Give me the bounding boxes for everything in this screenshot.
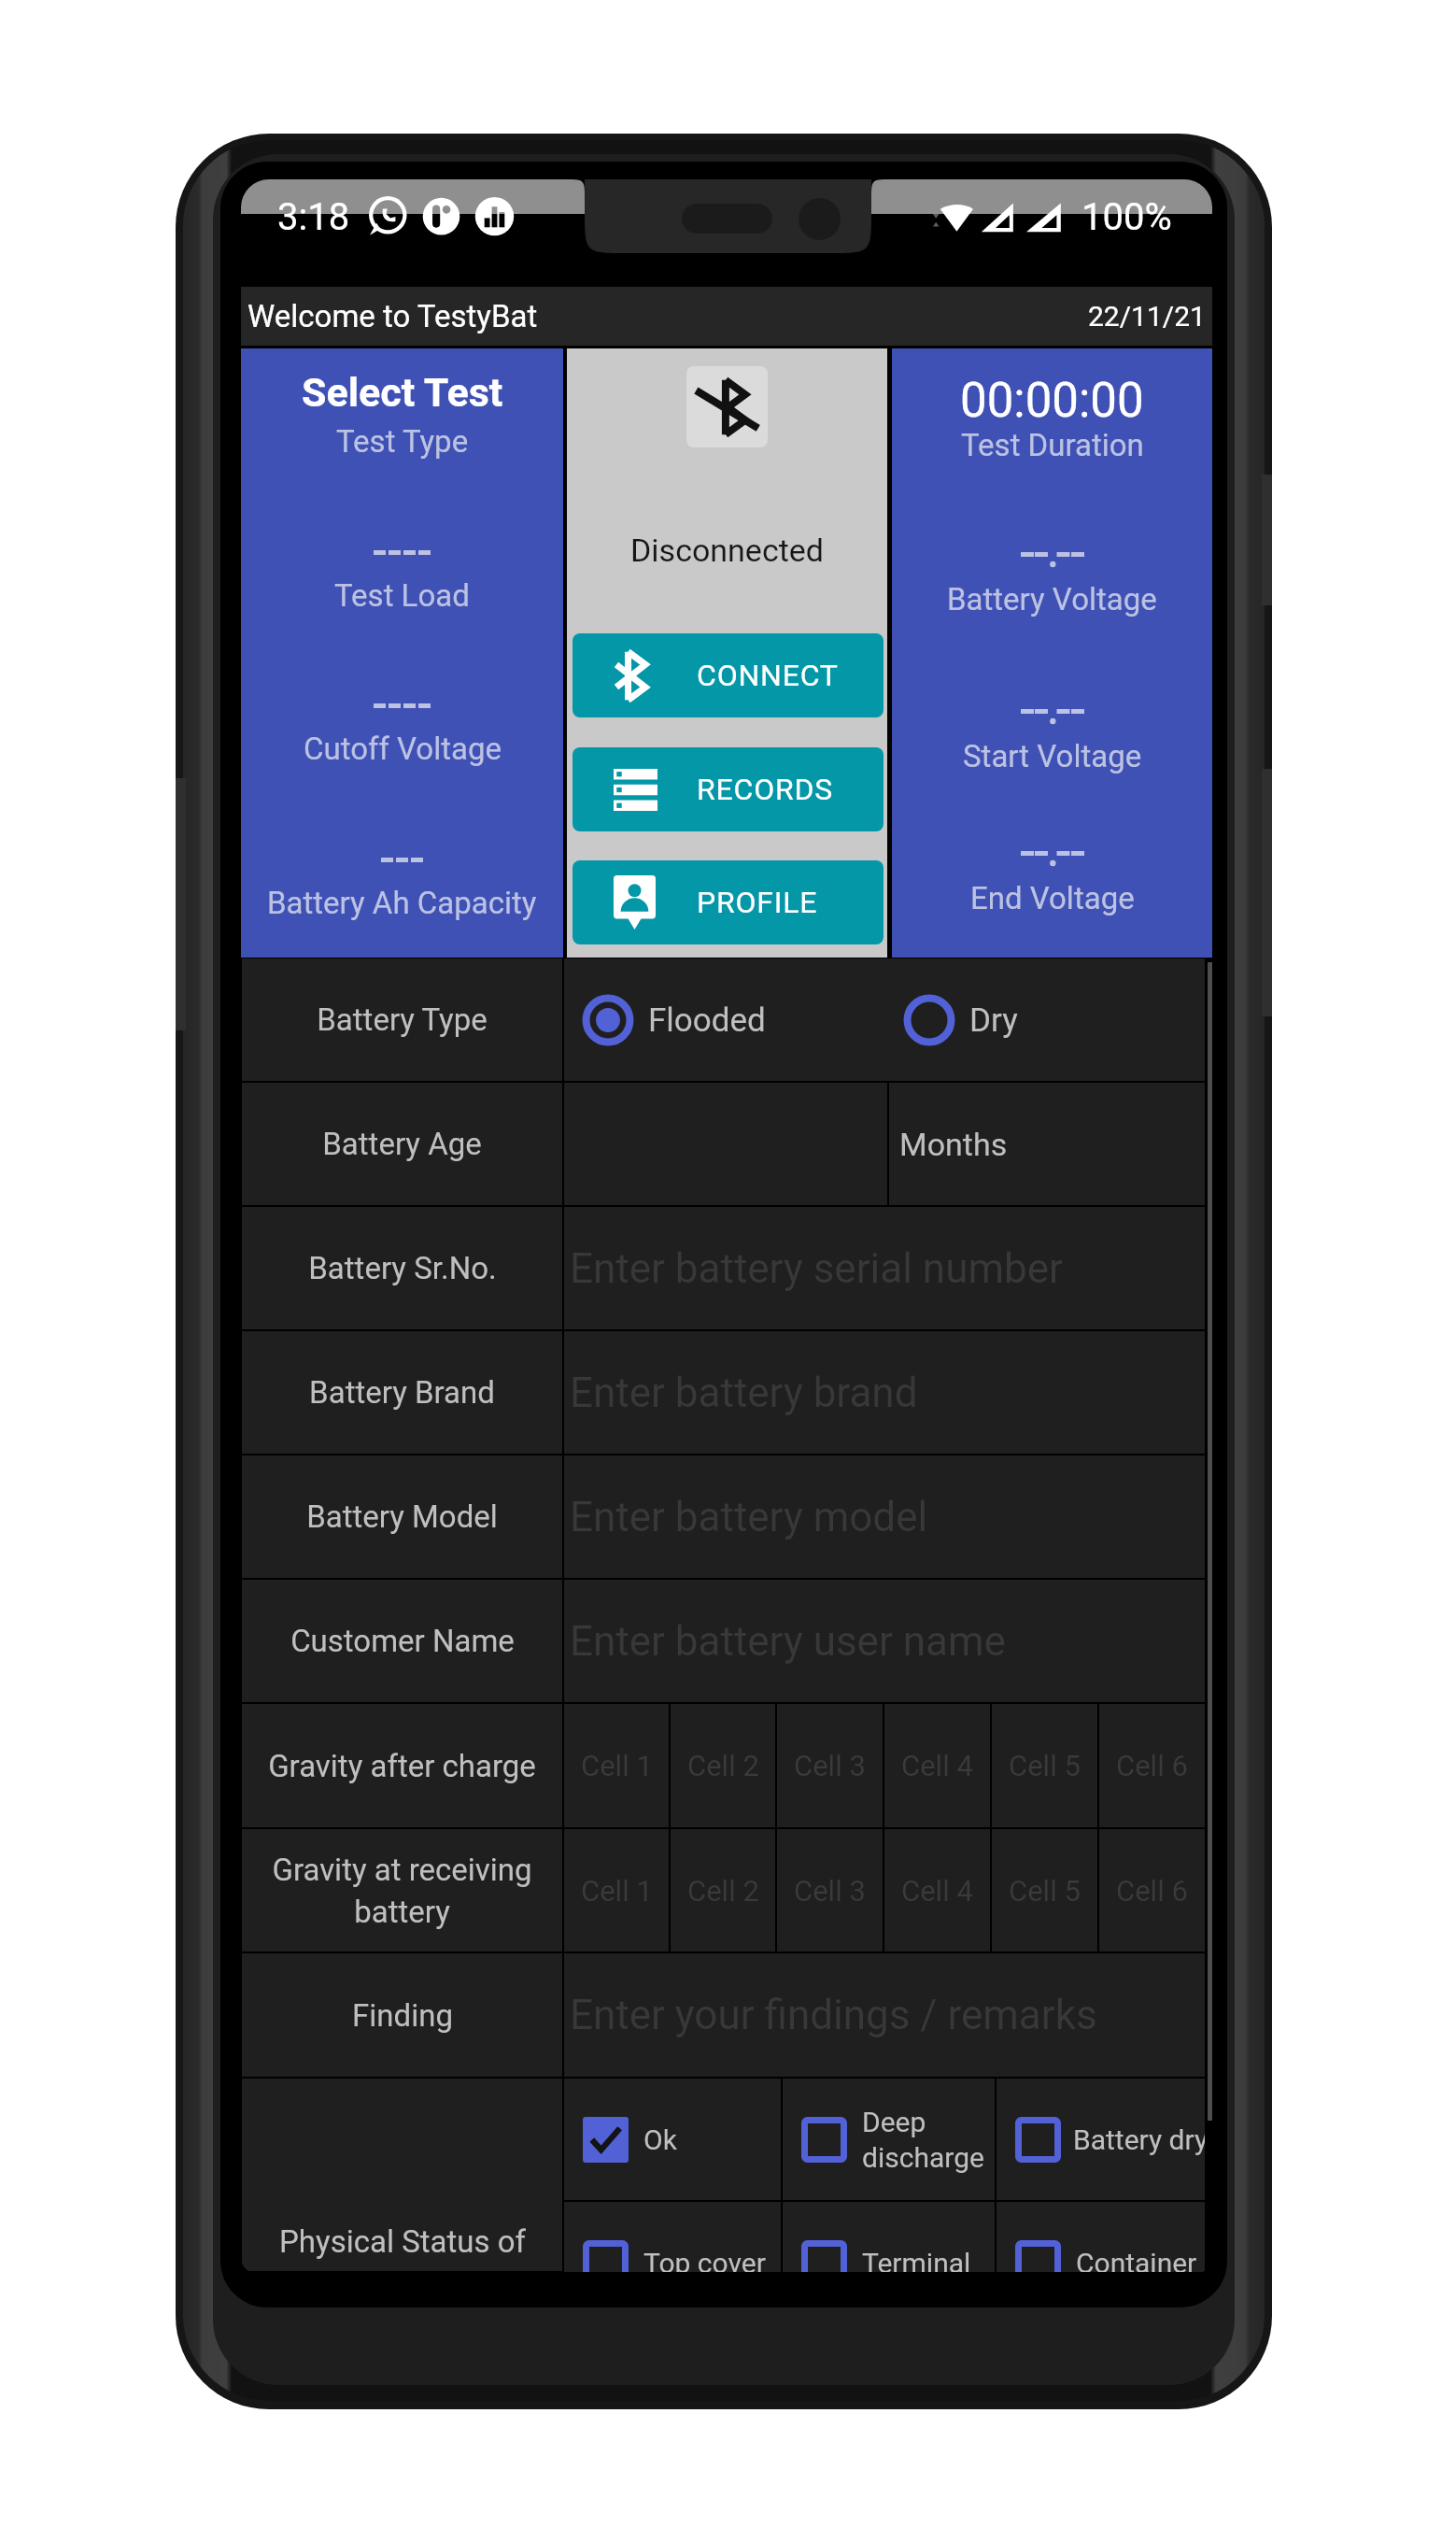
staticText: Cell 4 bbox=[901, 1874, 973, 1908]
staticText: RECORDS bbox=[697, 772, 834, 807]
staticText: Enter battery serial number bbox=[570, 1244, 1063, 1293]
staticText: Months bbox=[899, 1126, 1008, 1163]
staticText: Battery Sr.No. bbox=[308, 1250, 497, 1286]
button[interactable]: Cell 6 bbox=[1099, 1829, 1205, 1952]
staticText: 22/11/21 bbox=[1088, 300, 1206, 333]
staticText: Enter battery user name bbox=[570, 1617, 1006, 1666]
staticText: Battery Ah Capacity bbox=[267, 885, 537, 921]
staticText: Cutoff Voltage bbox=[304, 731, 502, 767]
staticText: Dry bbox=[969, 1001, 1018, 1040]
staticText: Gravity at receiving battery bbox=[257, 1852, 547, 1930]
button[interactable]: Enter your findings / remarks bbox=[564, 1953, 1205, 2077]
staticText: Top cover bbox=[643, 2247, 766, 2272]
button[interactable]: Battery dry bbox=[997, 2079, 1205, 2200]
button[interactable]: Bluetooth status bbox=[686, 366, 768, 447]
staticText: Cell 1 bbox=[581, 1874, 653, 1908]
button[interactable]: Enter battery model bbox=[564, 1455, 1205, 1578]
staticText: Container bbox=[1076, 2247, 1197, 2272]
button[interactable]: Enter battery serial number bbox=[564, 1207, 1205, 1329]
staticText: CONNECT bbox=[697, 658, 839, 693]
staticText: 00:00:00 bbox=[960, 373, 1144, 429]
staticText: Customer Name bbox=[290, 1623, 515, 1659]
staticText: Finding bbox=[352, 1997, 453, 2034]
staticText: Select Test bbox=[302, 369, 503, 416]
staticText: Enter battery model bbox=[570, 1493, 928, 1541]
staticText: Cell 5 bbox=[1009, 1874, 1081, 1908]
button[interactable]: Cell 1 bbox=[564, 1704, 669, 1827]
staticText: Battery Brand bbox=[309, 1374, 495, 1411]
button[interactable]: PROFILE bbox=[573, 860, 883, 944]
button[interactable]: Enter battery brand bbox=[564, 1331, 1205, 1454]
staticText: Start Voltage bbox=[963, 738, 1142, 774]
button[interactable]: Terminal bbox=[783, 2202, 995, 2272]
button[interactable]: Cell 5 bbox=[992, 1704, 1097, 1827]
staticText: Flooded bbox=[648, 1001, 766, 1040]
staticText: Test Load bbox=[334, 577, 470, 614]
staticText: Battery Voltage bbox=[947, 581, 1157, 618]
staticText: Test Type bbox=[336, 423, 469, 460]
staticText: Gravity after charge bbox=[268, 1748, 536, 1784]
button[interactable]: Cell 4 bbox=[884, 1704, 990, 1827]
staticText: Enter battery brand bbox=[570, 1369, 918, 1417]
staticText: Physical Status of bbox=[279, 2223, 526, 2260]
button[interactable]: Cell 2 bbox=[671, 1704, 775, 1827]
staticText: Welcome to TestyBat bbox=[247, 298, 538, 334]
button[interactable]: Enter battery user name bbox=[564, 1580, 1205, 1702]
staticText: Cell 2 bbox=[687, 1874, 759, 1908]
staticText: Ok bbox=[643, 2123, 677, 2156]
staticText: Test Duration bbox=[961, 427, 1144, 463]
staticText: Cell 3 bbox=[794, 1874, 866, 1908]
staticText: Terminal bbox=[862, 2247, 971, 2272]
staticText: Deep discharge bbox=[862, 2106, 984, 2174]
staticText: Cell 6 bbox=[1116, 1749, 1188, 1782]
staticText: Cell 5 bbox=[1009, 1749, 1081, 1782]
staticText: Battery dry bbox=[1073, 2123, 1205, 2156]
staticText: PROFILE bbox=[697, 885, 818, 920]
button[interactable]: Cell 3 bbox=[777, 1829, 883, 1952]
button[interactable]: Ok bbox=[564, 2079, 781, 2200]
button[interactable]: RECORDS bbox=[573, 747, 883, 831]
button[interactable]: Months bbox=[889, 1083, 1205, 1205]
button[interactable]: Cell 6 bbox=[1099, 1704, 1205, 1827]
staticText: 3:18 bbox=[277, 195, 350, 239]
staticText: Cell 4 bbox=[901, 1749, 973, 1782]
button[interactable]: Cell 2 bbox=[671, 1829, 775, 1952]
button[interactable]: Container bbox=[997, 2202, 1205, 2272]
button[interactable]: Top cover bbox=[564, 2202, 781, 2272]
button[interactable]: Dry bbox=[903, 994, 1018, 1046]
button[interactable]: CONNECT bbox=[573, 633, 883, 717]
button[interactable]: Flooded bbox=[582, 994, 766, 1046]
staticText: Battery Age bbox=[322, 1126, 482, 1162]
staticText: Enter your findings / remarks bbox=[570, 1991, 1097, 2039]
button[interactable]: Cell 3 bbox=[777, 1704, 883, 1827]
staticText: End Voltage bbox=[970, 880, 1135, 916]
staticText: Battery Model bbox=[306, 1498, 498, 1535]
button[interactable]: Cell 1 bbox=[564, 1829, 669, 1952]
staticText: Cell 2 bbox=[687, 1749, 759, 1782]
staticText: Disconnected bbox=[630, 532, 825, 569]
button[interactable]: Cell 5 bbox=[992, 1829, 1097, 1952]
staticText: Cell 1 bbox=[581, 1749, 653, 1782]
button[interactable]: Cell 4 bbox=[884, 1829, 990, 1952]
button[interactable]: Deep discharge bbox=[783, 2079, 995, 2200]
staticText: 100% bbox=[1081, 195, 1172, 239]
staticText: Cell 3 bbox=[794, 1749, 866, 1782]
staticText: Battery Type bbox=[317, 1001, 488, 1038]
staticText: Cell 6 bbox=[1116, 1874, 1188, 1908]
